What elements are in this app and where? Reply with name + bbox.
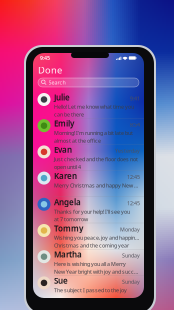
staticText: Morning! I'm running a bit late but — [54, 129, 133, 136]
staticText: Karen — [54, 171, 77, 181]
staticText: Sue — [54, 275, 68, 286]
staticText: Search — [48, 79, 65, 86]
staticText: Monday — [120, 226, 140, 233]
staticText: Here is wishing you all a Merry — [54, 260, 126, 267]
staticText: 12:45 — [127, 200, 140, 207]
button[interactable]: Emily — [33, 115, 144, 141]
staticText: Evan — [54, 144, 72, 155]
button[interactable]: Julie — [33, 89, 144, 115]
button[interactable]: Done — [33, 63, 67, 77]
staticText: Emily — [54, 118, 74, 129]
staticText: open until 4 — [54, 163, 81, 170]
staticText: The subject I passed to the joy — [54, 287, 127, 294]
staticText: New Year bright with joy and success — [54, 268, 140, 275]
staticText: Just checked and the floor does not — [54, 156, 138, 163]
button[interactable]: Martha — [33, 246, 144, 272]
button[interactable]: Angela — [33, 194, 144, 220]
staticText: Sunday — [122, 278, 140, 285]
staticText: 8:54 — [130, 121, 140, 128]
staticText: Wishing you peace, joy and happiness — [54, 234, 140, 241]
staticText: Sunday — [122, 252, 140, 259]
staticText: Tommy — [54, 223, 83, 234]
staticText: 9:45 — [40, 54, 50, 62]
staticText: Julie — [54, 92, 70, 103]
staticText: Angela — [54, 197, 81, 207]
staticText: 9:41 — [130, 95, 140, 102]
staticText: Thanks for your help! I'll see you — [54, 208, 130, 215]
staticText: at 7 tomorrow — [54, 216, 88, 223]
button[interactable]: Sue — [33, 272, 144, 299]
staticText: Martha — [54, 249, 82, 260]
staticText: Christmas and the coming year — [54, 242, 129, 249]
button[interactable]: Evan — [33, 141, 144, 168]
button[interactable]: Karen — [33, 168, 144, 194]
button[interactable]: Tommy — [33, 220, 144, 246]
button[interactable]: Search — [38, 78, 139, 87]
staticText: Hello! Let me know what time you — [54, 103, 134, 110]
staticText: almost at the office — [54, 137, 101, 144]
staticText: Yesterday — [115, 147, 140, 154]
staticText: 12:45 — [127, 173, 140, 180]
staticText: Done — [38, 64, 62, 76]
staticText: Merry Christmas and happy New Year! — [54, 182, 140, 189]
staticText: can be there — [54, 111, 84, 118]
